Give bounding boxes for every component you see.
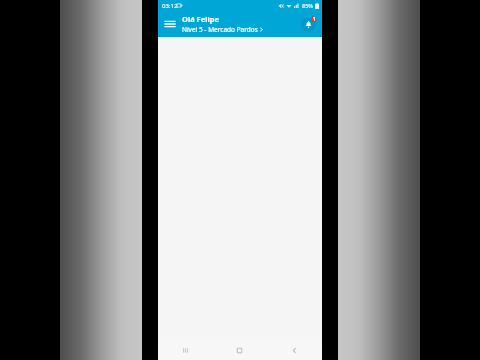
button[interactable]: Início xyxy=(212,340,267,360)
staticText: Olá Felipe xyxy=(182,14,219,24)
staticText: 03:12 xyxy=(162,2,178,10)
button[interactable]: Recentes xyxy=(158,340,212,360)
button[interactable]: Abrir menu xyxy=(161,15,179,33)
staticText: 1 xyxy=(313,16,316,22)
button[interactable]: Voltar xyxy=(267,340,322,360)
button[interactable]: Olá Felipe xyxy=(182,14,298,34)
button[interactable]: Notificações xyxy=(298,14,318,34)
staticText: Nível 5 - Mercado Pardos xyxy=(182,25,258,34)
staticText: 85% xyxy=(302,2,313,9)
